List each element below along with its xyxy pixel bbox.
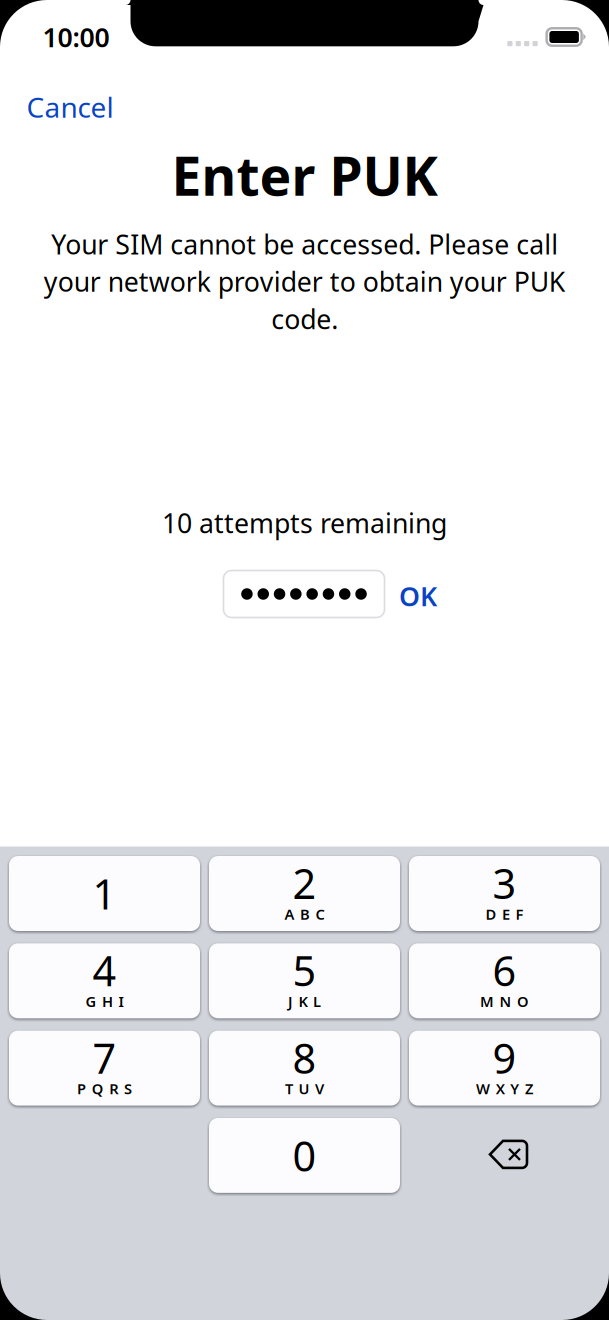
staticText: 0 [292,1128,316,1183]
button[interactable]: OK [389,574,447,618]
button[interactable]: 9 [409,1031,600,1106]
button[interactable]: Cancel [0,83,140,131]
button[interactable]: 3 [409,856,600,931]
staticText: JKL [288,992,321,1011]
staticText: TUV [285,1079,324,1098]
button[interactable]: 0 [209,1118,400,1193]
button[interactable]: 5 [209,943,400,1018]
staticText: 5 [292,943,316,998]
staticText: DEF [485,904,524,924]
staticText: 2 [292,856,316,910]
staticText: 9 [492,1030,516,1085]
button[interactable]: 1 [9,856,200,931]
staticText: PQRS [77,1079,132,1098]
staticText: 7 [92,1030,116,1085]
button[interactable]: 4 [9,943,200,1018]
staticText: 1 [92,866,116,921]
staticText: 8 [292,1030,316,1085]
staticText: OK [399,578,437,614]
button[interactable]: 6 [409,943,600,1018]
staticText: 10 attempts remaining [162,505,447,541]
button[interactable]: Delete [409,1118,600,1193]
staticText: ABC [284,904,325,924]
staticText: 4 [92,943,116,998]
staticText: 6 [492,943,516,998]
staticText: Your SIM cannot be accessed. Please call… [43,226,565,337]
staticText: 10:00 [42,19,109,55]
staticText: 3 [492,856,516,910]
staticText: MNO [480,992,529,1011]
staticText: Cancel [26,88,113,126]
staticText: Enter PUK [171,140,437,210]
button[interactable]: 2 [209,856,400,931]
staticText: GHI [85,992,124,1011]
staticText: WXYZ [476,1079,533,1098]
button[interactable]: 7 [9,1031,200,1106]
button[interactable]: 8 [209,1031,400,1106]
